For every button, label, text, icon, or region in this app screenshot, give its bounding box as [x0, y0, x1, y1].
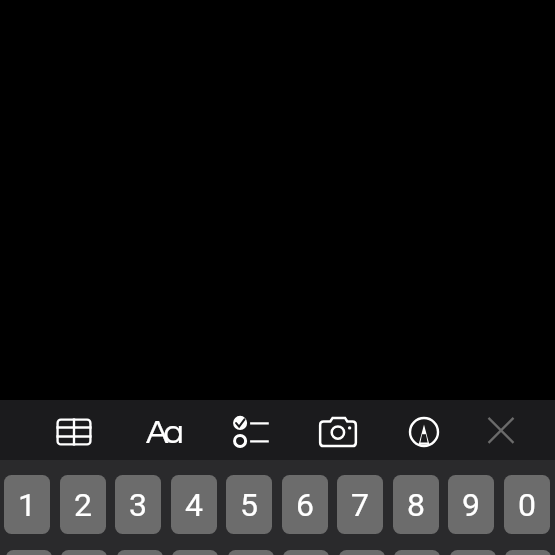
staticText: 0 [518, 486, 536, 524]
button[interactable]: w [61, 550, 107, 555]
staticText: 4 [185, 486, 203, 524]
button[interactable]: q [6, 550, 52, 555]
staticText: 8 [407, 486, 425, 524]
button[interactable]: 1 [4, 475, 50, 534]
staticText: 6 [296, 486, 314, 524]
staticText: 3 [129, 486, 147, 524]
button[interactable]: y [283, 550, 329, 555]
button[interactable]: 3 [115, 475, 161, 534]
button[interactable]: 4 [171, 475, 217, 534]
button[interactable]: Checkboxes [224, 406, 276, 458]
button[interactable]: 2 [60, 475, 106, 534]
button[interactable]: i [394, 550, 440, 555]
button[interactable]: 5 [226, 475, 272, 534]
button[interactable]: Close [475, 406, 527, 458]
button[interactable]: e [117, 550, 163, 555]
button[interactable]: r [172, 550, 218, 555]
button[interactable]: Take photo [312, 406, 364, 458]
staticText: 7 [351, 486, 369, 524]
staticText: Aa [146, 415, 179, 450]
button[interactable]: 9 [448, 475, 494, 534]
staticText: 9 [462, 486, 480, 524]
staticText: 2 [74, 486, 92, 524]
staticText: 5 [240, 486, 258, 524]
button[interactable]: 8 [393, 475, 439, 534]
button[interactable]: 6 [282, 475, 328, 534]
button[interactable]: Drawing [398, 406, 450, 458]
staticText: 1 [18, 486, 36, 524]
button[interactable]: o [450, 550, 496, 555]
button[interactable]: 7 [337, 475, 383, 534]
button[interactable]: Insert table [48, 406, 100, 458]
button[interactable]: t [228, 550, 274, 555]
button[interactable]: 0 [504, 475, 550, 534]
button[interactable]: p [505, 550, 551, 555]
button[interactable]: u [339, 550, 385, 555]
button[interactable]: Text formatting [138, 406, 190, 458]
